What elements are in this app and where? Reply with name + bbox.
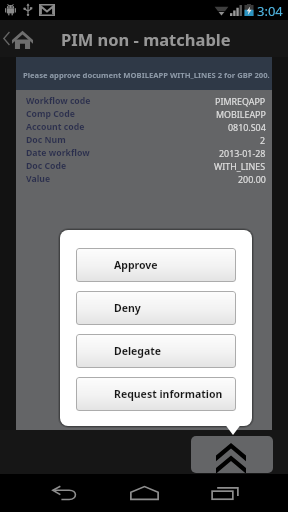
staticText: Approve <box>114 258 158 272</box>
button[interactable]: Navigate up, Home <box>0 20 50 57</box>
staticText: Request information <box>114 387 223 401</box>
staticText: 2 <box>260 134 266 146</box>
staticText: MOBILEAPP <box>216 108 266 120</box>
staticText: PIM non - matchable <box>61 28 231 50</box>
staticText: Workflow code <box>26 95 91 107</box>
staticText: Please approve document MOBILEAPP WITH_L… <box>23 70 270 80</box>
staticText: Delegate <box>114 344 162 358</box>
button[interactable]: Show actions <box>191 436 273 473</box>
button[interactable]: Deny <box>76 291 236 325</box>
button[interactable]: Approve <box>76 248 236 282</box>
staticText: Doc Code <box>26 160 67 172</box>
button[interactable]: Home <box>125 474 165 512</box>
staticText: 2013-01-28 <box>219 147 266 159</box>
staticText: PIMREQAPP <box>215 95 266 107</box>
staticText: Doc Num <box>26 134 66 146</box>
staticText: 0810.S04 <box>228 121 266 133</box>
staticText: Value <box>26 173 51 185</box>
button[interactable]: Back <box>44 474 84 512</box>
staticText: 3:04 <box>257 2 283 20</box>
staticText: WITH_LINES <box>214 160 266 172</box>
staticText: Account code <box>26 121 85 133</box>
button[interactable]: Recent apps <box>205 474 245 512</box>
staticText: 200.00 <box>238 173 266 185</box>
staticText: Deny <box>114 301 141 315</box>
button[interactable]: Request information <box>76 377 236 411</box>
staticText: Comp Code <box>26 108 75 120</box>
staticText: Date workflow <box>26 147 90 159</box>
button[interactable]: Delegate <box>76 334 236 368</box>
